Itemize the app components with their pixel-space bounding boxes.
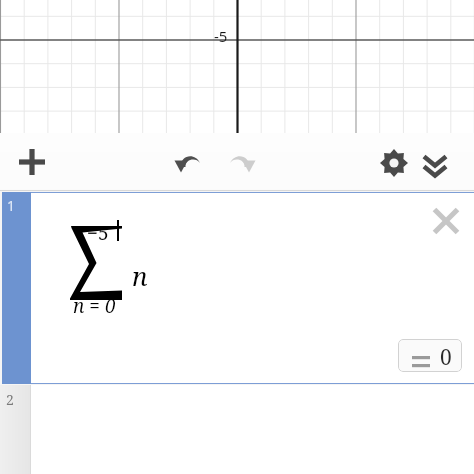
staticText: n = 0 — [73, 293, 116, 319]
staticText: 2 — [6, 390, 14, 409]
staticText: 1 — [7, 196, 16, 215]
button[interactable]: Add expression — [16, 146, 48, 178]
staticText: 0 — [440, 343, 452, 372]
button[interactable]: Collapse — [418, 148, 452, 182]
button[interactable]: Delete expression — [428, 203, 464, 239]
staticText: −5 — [87, 220, 109, 246]
button[interactable]: Undo — [172, 147, 206, 181]
button[interactable]: Settings — [378, 147, 410, 179]
button[interactable]: 0 — [398, 339, 462, 372]
button[interactable]: Redo — [224, 147, 258, 181]
button[interactable]: 2 — [0, 385, 474, 474]
staticText: -5 — [214, 26, 228, 46]
staticText: n — [132, 258, 148, 293]
button[interactable]: 1 — [2, 192, 474, 384]
